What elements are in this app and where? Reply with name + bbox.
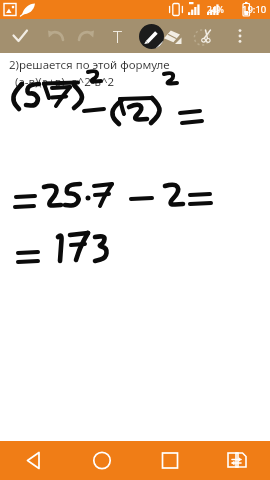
staticText: 2)решается по этой формуле [9, 57, 170, 73]
button[interactable]: Redo [72, 19, 100, 53]
button[interactable]: Multi window [204, 441, 270, 480]
button[interactable]: Back [0, 441, 68, 480]
button[interactable]: Recents [136, 441, 204, 480]
staticText: (а-в)(а+в)=а^2-в^2 [9, 74, 115, 90]
button[interactable]: More options [226, 19, 254, 53]
button[interactable]: Done [6, 19, 34, 53]
button[interactable]: Pen [136, 19, 166, 53]
staticText: 19:10 [242, 3, 267, 16]
staticText: T [113, 25, 123, 48]
button[interactable]: Undo [42, 19, 70, 53]
button[interactable]: Home [68, 441, 136, 480]
button[interactable]: Selection [189, 19, 217, 53]
staticText: 24% [207, 4, 224, 16]
button[interactable]: T [104, 19, 132, 53]
button[interactable]: Eraser [158, 19, 186, 53]
